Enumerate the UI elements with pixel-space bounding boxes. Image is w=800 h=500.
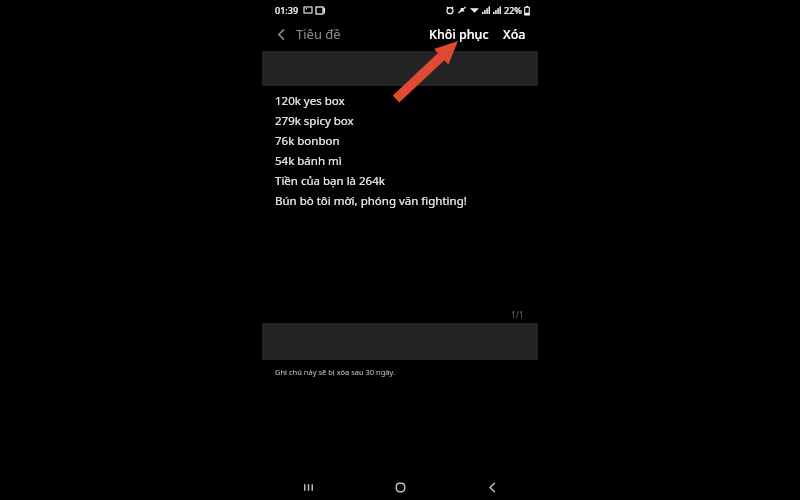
- staticText: Ghi chú này sẽ bị xóa sau 30 ngày.: [275, 367, 396, 377]
- staticText: 279k spicy box: [275, 113, 354, 129]
- staticText: 1/1: [511, 309, 524, 321]
- other: Back: [272, 25, 290, 43]
- button[interactable]: Recents: [293, 474, 323, 500]
- staticText: 22%: [504, 4, 522, 16]
- staticText: Tiền của bạn là 264k: [275, 173, 385, 189]
- button[interactable]: Xóa: [499, 22, 530, 47]
- button[interactable]: [262, 51, 538, 86]
- staticText: Bún bò tôi mời, phóng văn fighting!: [275, 193, 467, 209]
- staticText: 01:39: [275, 4, 299, 16]
- staticText: Xóa: [503, 26, 526, 43]
- button[interactable]: Khôi phục: [425, 22, 493, 47]
- button[interactable]: Home: [385, 474, 415, 500]
- staticText: 76k bonbon: [275, 133, 340, 149]
- button[interactable]: Back: [477, 474, 507, 500]
- button[interactable]: 120k yes box: [262, 86, 538, 213]
- staticText: Khôi phục: [429, 26, 489, 43]
- staticText: 120k yes box: [275, 93, 345, 109]
- button[interactable]: Back: [262, 25, 347, 43]
- staticText: 54k bánh mì: [275, 153, 342, 169]
- staticText: Tiêu đề: [296, 25, 341, 43]
